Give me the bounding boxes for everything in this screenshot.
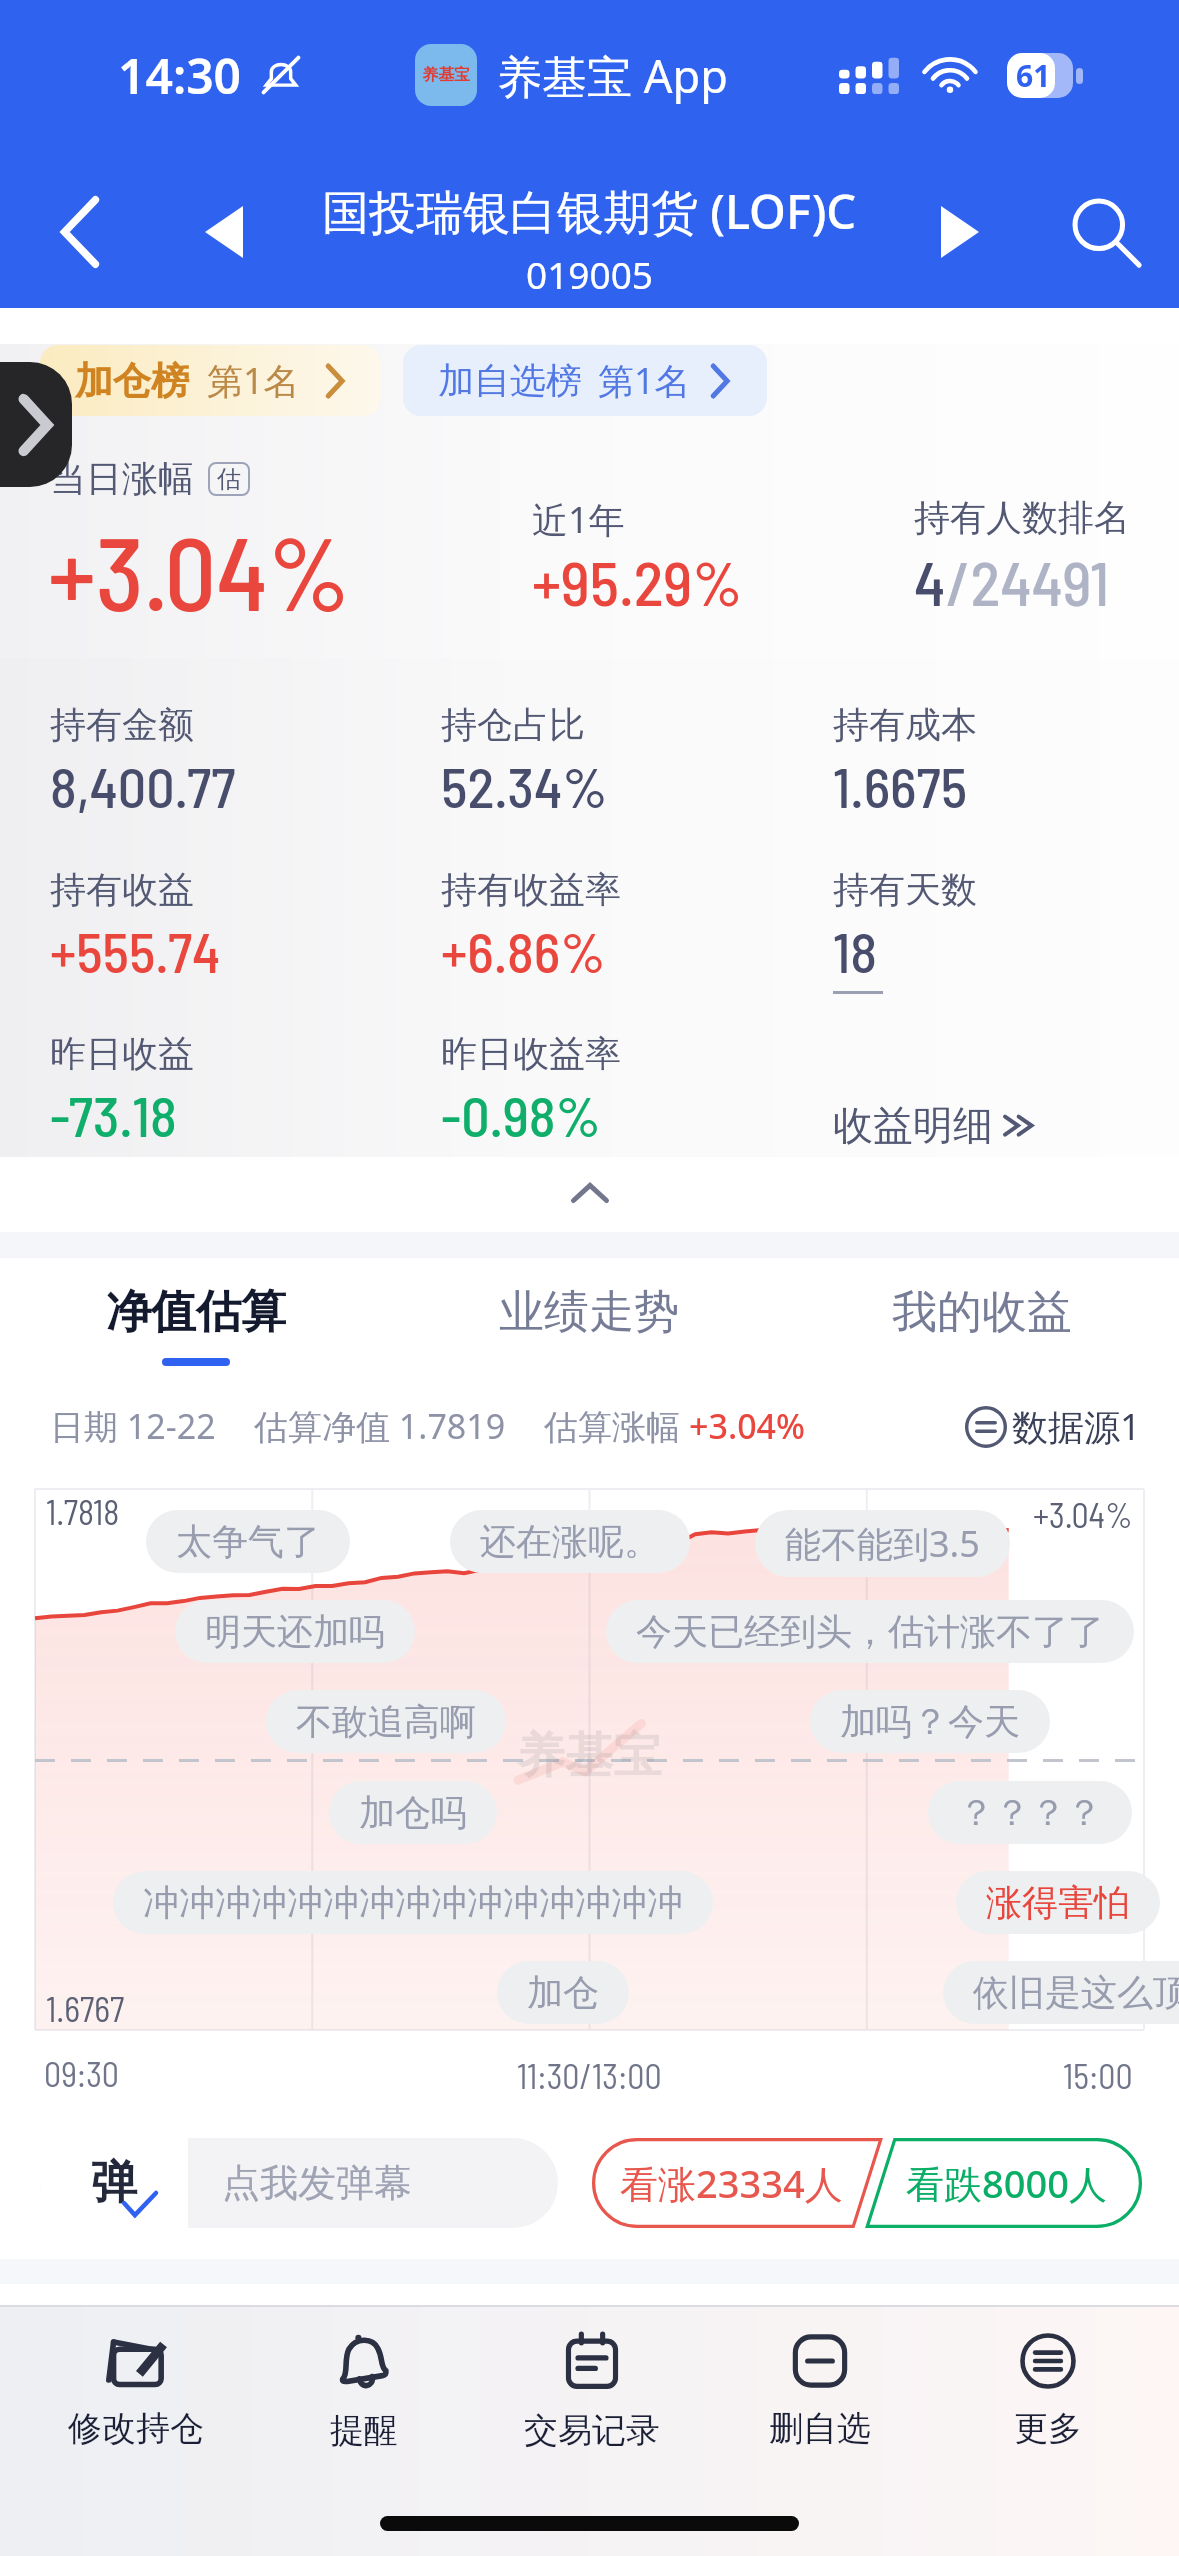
- staticText: 还在涨呢。: [480, 1519, 660, 1564]
- button[interactable]: 收益明细: [833, 1100, 1037, 1150]
- staticText: 第1名: [598, 356, 691, 405]
- button[interactable]: 删自选: [710, 2309, 930, 2499]
- staticText: 019005: [526, 249, 653, 299]
- staticText: 明天还加吗: [205, 1609, 385, 1654]
- staticText: ？？？？: [958, 1790, 1102, 1835]
- staticText: +95.29%: [532, 544, 743, 618]
- staticText: 国投瑞银白银期货 (LOF)C: [322, 179, 857, 243]
- staticText: 我的收益: [892, 1284, 1072, 1341]
- staticText: 日期 12-22: [50, 1403, 216, 1449]
- staticText: 依旧是这么顶: [973, 1970, 1179, 2015]
- staticText: 14:30: [118, 43, 242, 108]
- button[interactable]: 交易记录: [482, 2309, 702, 2499]
- staticText: 今天已经到头，估计涨不了了: [636, 1609, 1104, 1654]
- staticText: 业绩走势: [499, 1284, 679, 1341]
- staticText: 收益明细: [833, 1100, 993, 1150]
- staticText: 修改持仓: [68, 2407, 204, 2450]
- staticText: -73.18: [50, 1081, 177, 1148]
- staticText: 看涨23334人: [620, 2157, 843, 2209]
- staticText: 加自选榜: [438, 358, 582, 403]
- staticText: 持有收益: [50, 867, 194, 912]
- button[interactable]: 弹: [40, 2138, 558, 2228]
- staticText: 更多: [1014, 2407, 1082, 2450]
- staticText: 当日涨幅: [50, 456, 194, 501]
- staticText: 估: [217, 464, 241, 494]
- staticText: 加仓榜: [75, 357, 189, 405]
- staticText: +3.04%: [1033, 1494, 1133, 1535]
- staticText: 估算净值 1.7819: [254, 1403, 506, 1449]
- button[interactable]: 净值估算: [46, 1262, 346, 1390]
- staticText: 持有人数排名: [914, 495, 1130, 540]
- staticText: +6.86%: [441, 917, 606, 984]
- staticText: 第1名: [207, 356, 300, 405]
- staticText: 18: [833, 917, 878, 984]
- staticText: 持仓占比: [441, 702, 585, 747]
- staticText: /24491: [946, 544, 1110, 618]
- staticText: 涨得害怕: [986, 1880, 1130, 1925]
- staticText: 删自选: [769, 2407, 871, 2450]
- staticText: 冲冲冲冲冲冲冲冲冲冲冲冲冲冲冲: [143, 1880, 683, 1925]
- staticText: +3.04%: [48, 509, 351, 631]
- button[interactable]: Previous fund: [172, 182, 276, 282]
- staticText: -0.98%: [441, 1081, 601, 1148]
- staticText: +555.74: [50, 917, 221, 984]
- staticText: 加仓吗: [359, 1790, 467, 1835]
- staticText: 加吗？今天: [840, 1699, 1020, 1744]
- staticText: 不敢追高啊: [296, 1699, 476, 1744]
- staticText: 养基宝: [422, 65, 470, 85]
- button[interactable]: Expand drawer: [0, 362, 72, 487]
- button[interactable]: 加自选榜: [403, 345, 767, 416]
- staticText: 养基宝 App: [497, 45, 728, 106]
- button[interactable]: 业绩走势: [439, 1262, 739, 1390]
- button[interactable]: 提醒: [254, 2309, 474, 2499]
- staticText: 持有天数: [833, 867, 977, 912]
- staticText: 1.7818: [46, 1491, 120, 1532]
- staticText: +3.04%: [689, 1403, 806, 1449]
- button[interactable]: 更多: [938, 2309, 1158, 2499]
- staticText: 太争气了: [176, 1519, 320, 1564]
- button[interactable]: Back: [28, 182, 132, 282]
- staticText: 数据源1: [1012, 1402, 1141, 1451]
- staticText: 净值估算: [106, 1284, 286, 1341]
- staticText: 持有金额: [50, 702, 194, 747]
- staticText: 持有成本: [833, 702, 977, 747]
- button[interactable]: 看涨23334人: [592, 2138, 870, 2228]
- staticText: 昨日收益率: [441, 1031, 621, 1076]
- button[interactable]: Search: [1052, 182, 1160, 282]
- staticText: 近1年: [532, 495, 625, 544]
- button[interactable]: Collapse: [515, 1163, 665, 1223]
- staticText: 养基宝: [517, 1726, 661, 1786]
- staticText: 15:00: [1063, 2055, 1133, 2096]
- button[interactable]: 我的收益: [832, 1262, 1132, 1390]
- staticText: 弹: [91, 2154, 137, 2212]
- staticText: 交易记录: [524, 2409, 660, 2452]
- button[interactable]: 加仓榜: [40, 345, 381, 416]
- staticText: 8,400.77: [50, 752, 236, 819]
- staticText: 61: [1016, 55, 1051, 96]
- button[interactable]: 看跌8000人: [870, 2138, 1142, 2228]
- staticText: 昨日收益: [50, 1031, 194, 1076]
- staticText: 估算涨幅: [544, 1403, 689, 1449]
- staticText: 提醒: [330, 2409, 398, 2452]
- staticText: 1.6767: [46, 1988, 125, 2029]
- staticText: 持有收益率: [441, 867, 621, 912]
- staticText: 4: [914, 544, 946, 618]
- staticText: 11:30/13:00: [517, 2055, 662, 2096]
- button[interactable]: 修改持仓: [26, 2309, 246, 2499]
- staticText: 点我发弹幕: [222, 2159, 412, 2207]
- button[interactable]: Next fund: [908, 182, 1012, 282]
- staticText: 1.6675: [833, 752, 968, 819]
- staticText: 看跌8000人: [906, 2157, 1107, 2209]
- staticText: 能不能到3.5: [785, 1519, 980, 1568]
- button[interactable]: 数据源1: [965, 1402, 1141, 1451]
- staticText: 52.34%: [441, 752, 608, 819]
- staticText: 加仓: [527, 1970, 599, 2015]
- staticText: 09:30: [44, 2053, 120, 2094]
